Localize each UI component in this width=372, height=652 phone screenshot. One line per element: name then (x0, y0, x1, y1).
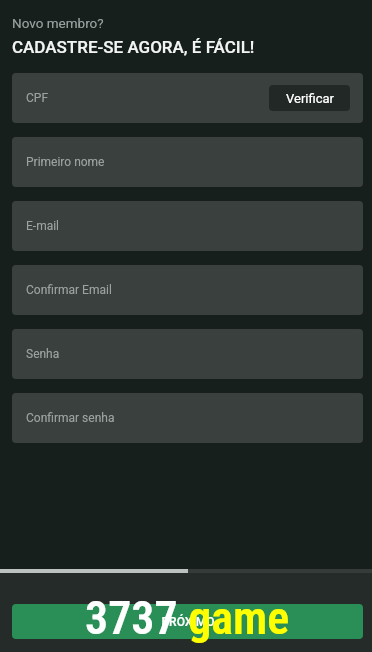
button[interactable]: Primeiro nome (12, 137, 363, 187)
button[interactable]: E-mail (12, 201, 363, 251)
button[interactable]: Senha (12, 329, 363, 379)
staticText: Confirmar Email (26, 283, 112, 297)
button[interactable]: Verificar (269, 85, 350, 111)
staticText: CADASTRE-SE AGORA, É FÁCIL! (12, 37, 255, 57)
staticText: Senha (26, 347, 60, 361)
staticText: 3737 game (85, 591, 290, 645)
button[interactable]: Confirmar senha (12, 393, 363, 443)
staticText: Confirmar senha (26, 411, 115, 425)
staticText: CPF (26, 91, 49, 105)
button[interactable]: Confirmar Email (12, 265, 363, 315)
staticText: Verificar (286, 91, 334, 106)
button[interactable]: CPF (12, 73, 363, 123)
staticText: E-mail (26, 219, 60, 233)
button[interactable]: PRÓXIMO (12, 604, 363, 639)
staticText: PRÓXIMO (161, 615, 215, 629)
staticText: Novo membro? (12, 15, 104, 31)
staticText: Primeiro nome (26, 155, 105, 169)
